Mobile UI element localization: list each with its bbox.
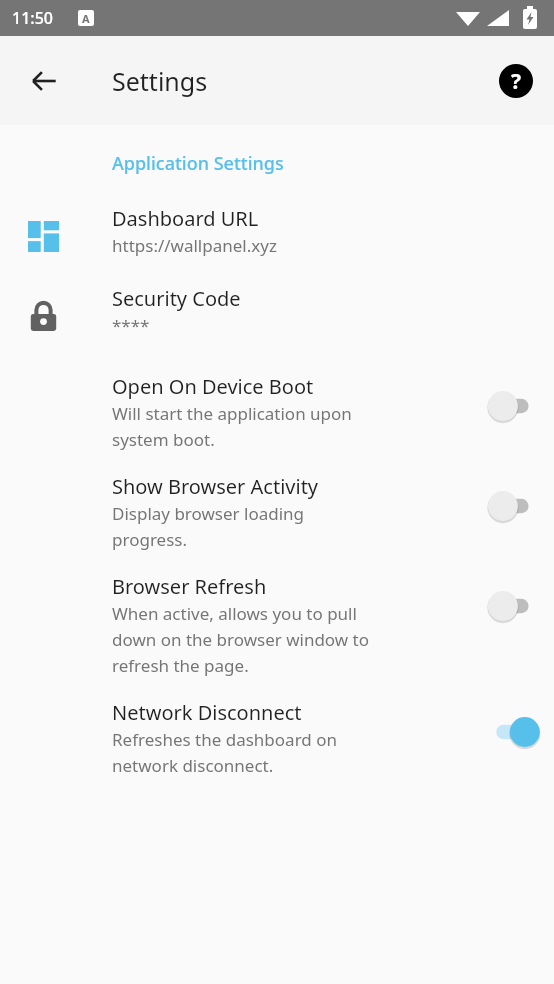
button[interactable]: Security Code (0, 285, 554, 337)
staticText: A (82, 11, 90, 26)
button[interactable]: Open On Device Boot off (488, 389, 540, 423)
button[interactable]: Show Browser Activity (0, 473, 554, 551)
staticText: Network Disconnect (112, 699, 302, 726)
button[interactable]: Help (492, 57, 540, 105)
button[interactable]: Browser Refresh off (488, 589, 540, 623)
staticText: When active, allows you to pull down on … (112, 602, 370, 677)
button[interactable]: Dashboard URL (0, 205, 554, 257)
staticText: https://wallpanel.xyz (112, 234, 277, 257)
button[interactable]: Open On Device Boot (0, 373, 554, 451)
staticText: Will start the application upon system b… (112, 402, 352, 451)
staticText: Display browser loading progress. (112, 502, 305, 551)
staticText: 11:50 (12, 7, 53, 29)
staticText: Open On Device Boot (112, 373, 314, 400)
button[interactable]: Network Disconnect (0, 699, 554, 777)
staticText: Dashboard URL (112, 205, 259, 232)
button[interactable]: Network Disconnect on (488, 715, 540, 749)
staticText: Application Settings (112, 151, 284, 176)
staticText: Security Code (112, 285, 241, 312)
button[interactable]: Back (20, 57, 68, 105)
staticText: Settings (112, 64, 208, 98)
staticText: Show Browser Activity (112, 473, 319, 500)
staticText: ? (511, 67, 522, 96)
button[interactable]: Show Browser Activity off (488, 489, 540, 523)
staticText: Refreshes the dashboard on network disco… (112, 728, 337, 777)
button[interactable]: Browser Refresh (0, 573, 554, 677)
staticText: Browser Refresh (112, 573, 267, 600)
staticText: **** (112, 314, 150, 337)
